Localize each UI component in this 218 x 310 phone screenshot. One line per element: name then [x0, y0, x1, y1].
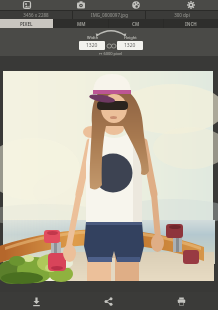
staticText: CM [132, 21, 140, 27]
staticText: MM [77, 21, 86, 27]
button[interactable] [145, 292, 218, 310]
button[interactable] [72, 292, 145, 310]
button[interactable]: 1320 [79, 41, 105, 50]
staticText: INCH [185, 21, 197, 27]
button[interactable] [108, 0, 163, 10]
button[interactable]: IMG_0800097.jpg [73, 11, 145, 19]
button[interactable] [54, 0, 108, 10]
button[interactable]: MM [54, 19, 108, 28]
staticText: 1320 [124, 42, 136, 49]
button[interactable]: CM [109, 19, 163, 28]
button[interactable] [0, 0, 54, 10]
button[interactable]: PIXEL [0, 19, 53, 28]
staticText: 1320 [86, 42, 98, 49]
button[interactable]: INCH [164, 19, 218, 28]
button[interactable]: 300 dpi [146, 11, 218, 19]
button[interactable]: 1320 [117, 41, 143, 50]
staticText: Width [87, 35, 99, 40]
staticText: 3456 x 2288 [23, 12, 49, 18]
button[interactable]: 3456 x 2288 [0, 11, 72, 19]
staticText: ↔ 6000 pixel [99, 51, 123, 56]
staticText: 300 dpi [174, 12, 190, 18]
button[interactable] [163, 0, 218, 10]
staticText: IMG_0800097.jpg [91, 12, 128, 18]
button[interactable] [0, 292, 72, 310]
staticText: PIXEL [20, 21, 33, 27]
staticText: Height [124, 35, 137, 40]
